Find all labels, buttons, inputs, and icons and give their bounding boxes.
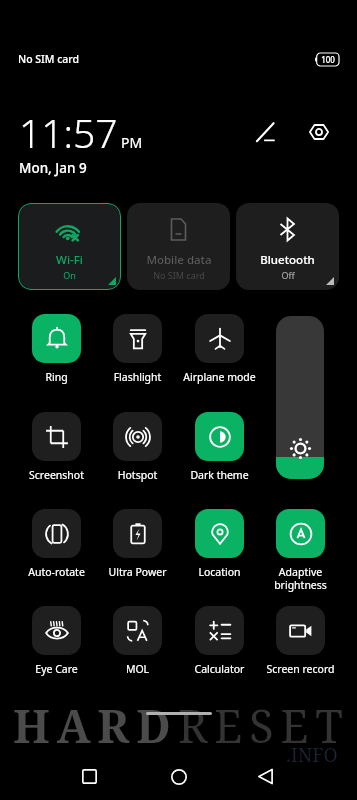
staticText: Mon, Jan 9 bbox=[19, 159, 87, 177]
staticText: Airplane mode bbox=[179, 370, 260, 384]
button[interactable]: Bluetooth bbox=[236, 203, 339, 290]
staticText: Wi-Fi bbox=[56, 252, 83, 268]
staticText: 11:57 bbox=[19, 106, 118, 159]
button[interactable]: Back bbox=[244, 755, 287, 798]
staticText: Flashlight bbox=[97, 370, 178, 384]
button[interactable] bbox=[113, 606, 162, 655]
button[interactable] bbox=[32, 314, 81, 363]
button[interactable] bbox=[195, 314, 244, 363]
staticText: Mobile data bbox=[146, 252, 212, 268]
staticText: .INFO bbox=[286, 742, 338, 768]
button[interactable] bbox=[113, 509, 162, 558]
button[interactable] bbox=[113, 314, 162, 363]
staticText: PM bbox=[121, 133, 143, 152]
staticText: Auto-rotate bbox=[16, 565, 97, 579]
staticText: Screen record bbox=[260, 662, 341, 676]
button[interactable] bbox=[276, 606, 325, 655]
button[interactable]: Mobile data bbox=[127, 203, 230, 290]
staticText: Off bbox=[281, 269, 295, 281]
button[interactable] bbox=[195, 509, 244, 558]
button[interactable] bbox=[195, 412, 244, 461]
button[interactable]: Edit bbox=[250, 115, 284, 149]
button[interactable] bbox=[32, 606, 81, 655]
staticText: Ultra Power bbox=[97, 565, 178, 579]
staticText: Dark theme bbox=[179, 468, 260, 482]
button[interactable]: Home bbox=[157, 755, 200, 798]
button[interactable] bbox=[276, 509, 325, 558]
staticText: Eye Care bbox=[16, 662, 97, 676]
staticText: Bluetooth bbox=[260, 252, 315, 268]
staticText: Adaptive brightness bbox=[260, 565, 341, 592]
staticText: Calculator bbox=[179, 662, 260, 676]
button[interactable]: Settings bbox=[302, 115, 336, 149]
button[interactable] bbox=[195, 606, 244, 655]
staticText: MOL bbox=[97, 662, 178, 676]
staticText: Screenshot bbox=[16, 468, 97, 482]
staticText: Location bbox=[179, 565, 260, 579]
button[interactable] bbox=[32, 412, 81, 461]
staticText: 100 bbox=[321, 54, 335, 65]
staticText: On bbox=[63, 269, 76, 281]
staticText: HARD bbox=[13, 695, 178, 756]
button[interactable] bbox=[32, 509, 81, 558]
button[interactable] bbox=[113, 412, 162, 461]
button[interactable]: Wi-Fi bbox=[18, 203, 121, 290]
button[interactable]: Brightness bbox=[276, 316, 324, 479]
staticText: RESET bbox=[178, 695, 350, 756]
staticText: No SIM card bbox=[153, 269, 205, 281]
button[interactable]: Recents bbox=[68, 755, 111, 798]
staticText: Hotspot bbox=[97, 468, 178, 482]
staticText: Ring bbox=[16, 370, 97, 384]
staticText: No SIM card bbox=[18, 52, 80, 66]
